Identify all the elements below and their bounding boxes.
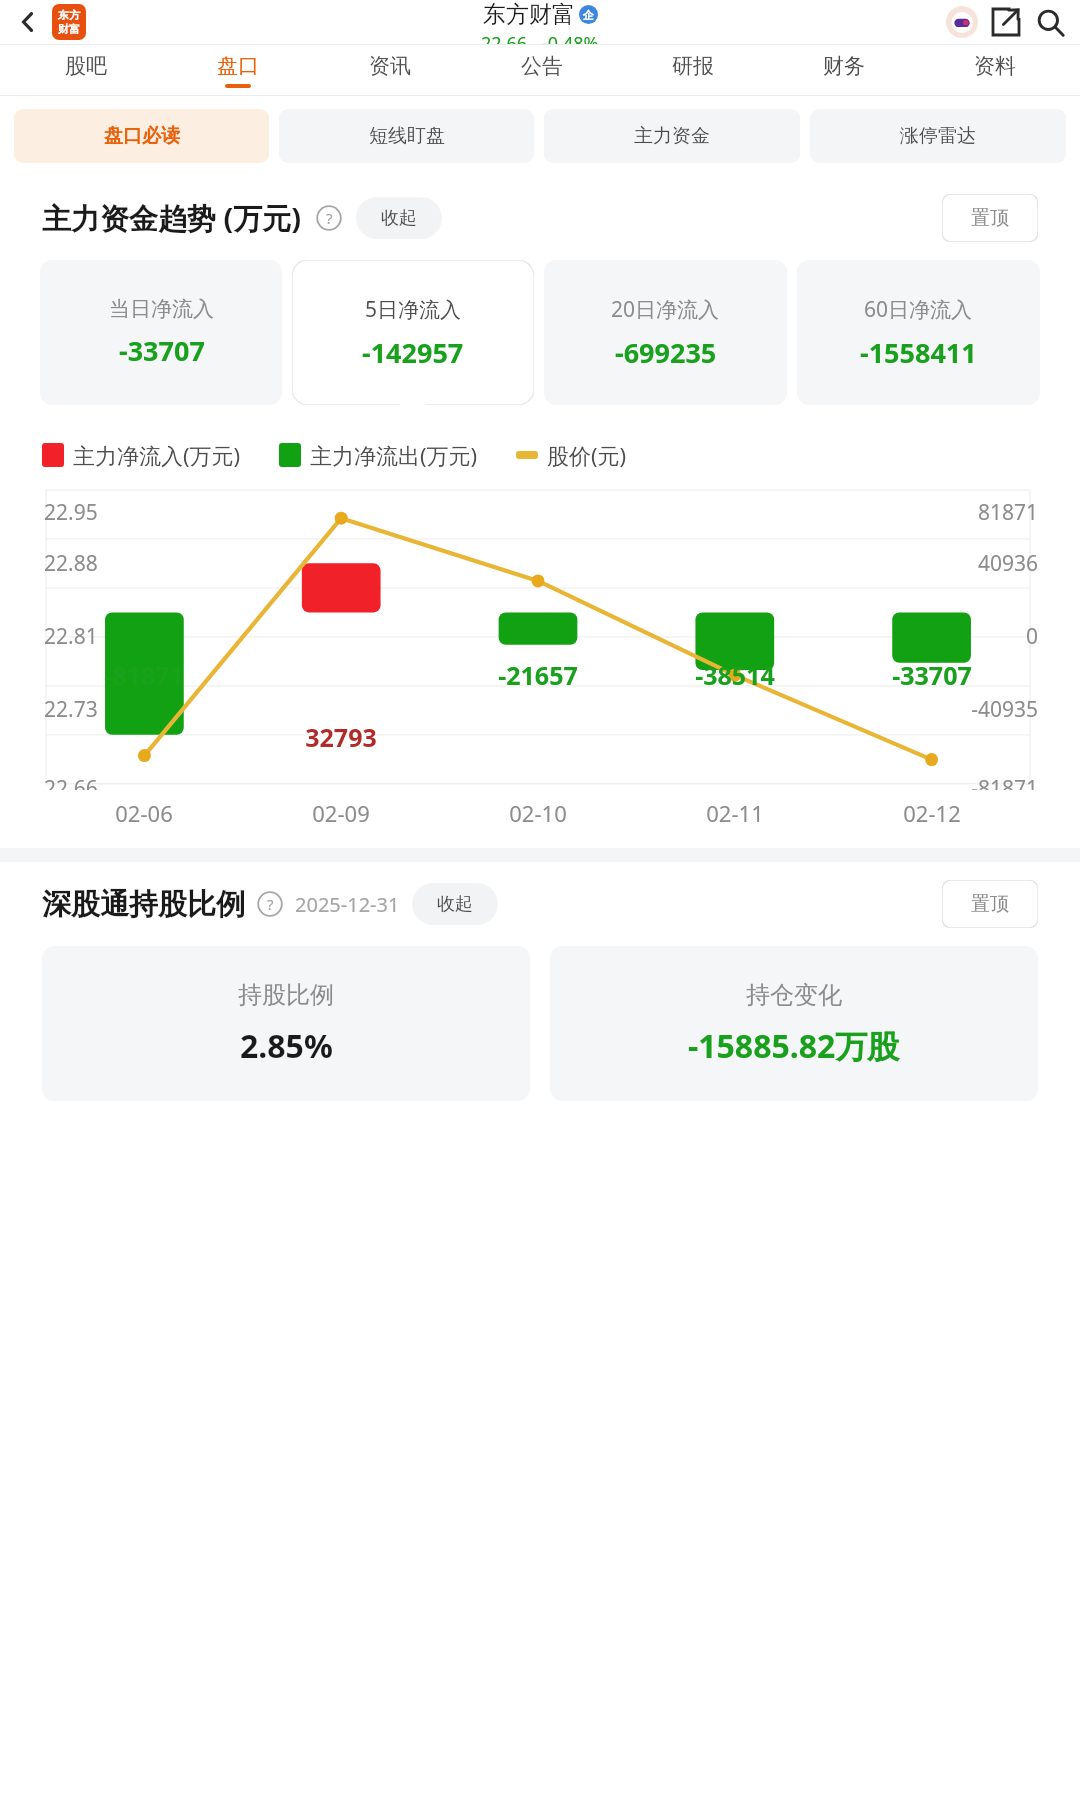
button[interactable]: 公告 [466, 45, 617, 95]
staticText: 企 [583, 8, 594, 22]
staticText: 短线盯盘 [369, 124, 445, 148]
staticText: 02-06 [115, 798, 173, 828]
button[interactable]: 收起 [356, 197, 442, 239]
staticText: 22.66 [44, 774, 98, 790]
staticText: ? [326, 208, 333, 228]
button[interactable]: 置顶 [942, 194, 1038, 242]
staticText: 22.88 [44, 549, 98, 578]
staticText: -15885.82万股 [688, 1024, 900, 1068]
staticText: 涨停雷达 [900, 124, 976, 148]
staticText: 东方 [58, 8, 80, 22]
staticText: -81871 [971, 774, 1038, 790]
staticText: 22.81 [44, 622, 98, 651]
staticText: 股吧 [65, 53, 107, 79]
staticText: 财富 [58, 22, 80, 36]
button[interactable]: 东方 [52, 4, 86, 40]
staticText: 公告 [521, 53, 563, 79]
button[interactable]: 主力资金 [544, 109, 800, 163]
staticText: -142957 [362, 334, 464, 371]
button[interactable]: Help [314, 203, 344, 233]
staticText: ? [267, 894, 274, 914]
button[interactable]: Back [6, 0, 50, 44]
staticText: 81871 [977, 498, 1038, 527]
staticText: 主力资金趋势 (万元) [42, 198, 302, 238]
button[interactable]: 盘口 [162, 45, 314, 95]
staticText: 40936 [977, 549, 1038, 578]
staticText: 2025-12-31 [295, 891, 400, 918]
staticText: 财务 [823, 53, 865, 79]
staticText: 收起 [381, 207, 417, 230]
button[interactable]: 涨停雷达 [810, 109, 1066, 163]
staticText: -81871 [104, 658, 184, 692]
staticText: 02-12 [903, 798, 961, 828]
staticText: 持仓变化 [746, 980, 842, 1010]
button[interactable]: 持仓变化 [550, 946, 1038, 1101]
staticText: 5日净流入 [365, 295, 462, 324]
button[interactable]: 财务 [768, 45, 919, 95]
staticText: 60日净流入 [864, 295, 973, 324]
staticText: -40935 [971, 695, 1038, 724]
staticText: 主力资金 [634, 124, 710, 148]
button[interactable]: 60日净流入 [797, 260, 1040, 405]
staticText: 东方财富 [483, 0, 575, 29]
staticText: 置顶 [971, 206, 1009, 230]
button[interactable]: Search [1028, 0, 1072, 44]
staticText: 22.66 [481, 31, 528, 44]
staticText: 盘口 [217, 53, 259, 79]
button[interactable]: 20日净流入 [544, 260, 787, 405]
staticText: 22.73 [44, 695, 98, 724]
staticText: 主力净流入(万元) [73, 440, 241, 470]
staticText: 持股比例 [238, 980, 334, 1010]
button[interactable]: Help [255, 889, 285, 919]
staticText: 深股通持股比例 [42, 886, 245, 923]
staticText: 20日净流入 [611, 295, 720, 324]
button[interactable]: 资讯 [314, 45, 466, 95]
staticText: 资料 [974, 53, 1016, 79]
staticText: 研报 [672, 53, 714, 79]
button[interactable]: 资料 [919, 45, 1070, 95]
staticText: 资讯 [369, 53, 411, 79]
staticText: 02-09 [312, 798, 370, 828]
staticText: 02-10 [509, 798, 567, 828]
staticText: 当日净流入 [109, 296, 214, 322]
staticText: 2.85% [240, 1024, 333, 1068]
staticText: 0 [1025, 622, 1038, 651]
staticText: -0.48% [542, 31, 599, 44]
staticText: -1558411 [860, 334, 977, 371]
staticText: 32793 [305, 720, 377, 754]
staticText: -38514 [695, 658, 775, 692]
button[interactable]: 盘口必读 [14, 109, 269, 163]
button[interactable]: Assistant [940, 0, 984, 44]
staticText: 收起 [437, 893, 473, 916]
staticText: 02-11 [706, 798, 764, 828]
button[interactable]: 置顶 [942, 880, 1038, 928]
button[interactable]: 持股比例 [42, 946, 530, 1101]
staticText: 置顶 [971, 892, 1009, 916]
button[interactable]: 收起 [412, 883, 498, 925]
button[interactable]: 当日净流入 [40, 260, 282, 405]
button[interactable]: 研报 [617, 45, 768, 95]
button[interactable]: 5日净流入 [292, 260, 534, 405]
staticText: -21657 [498, 658, 578, 692]
staticText: -33707 [892, 658, 972, 692]
staticText: 盘口必读 [104, 124, 180, 148]
staticText: 股价(元) [547, 440, 627, 470]
staticText: -699235 [615, 334, 717, 371]
staticText: 主力净流出(万元) [310, 440, 478, 470]
staticText: 22.95 [44, 498, 98, 527]
button[interactable]: 股吧 [10, 45, 162, 95]
button[interactable]: 短线盯盘 [279, 109, 534, 163]
staticText: -33707 [119, 332, 205, 369]
button[interactable]: Share [984, 0, 1028, 44]
